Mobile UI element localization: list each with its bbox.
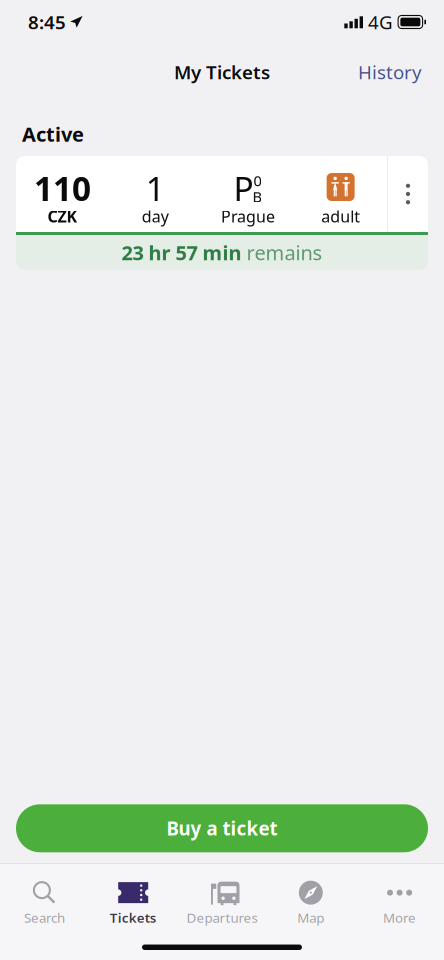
staticText: Map [297, 909, 324, 926]
staticText: P [233, 166, 253, 210]
staticText: 23 hr 57 min [121, 239, 241, 266]
staticText: Prague [221, 206, 275, 227]
staticText: CZK [47, 206, 77, 227]
staticText: 4G [368, 10, 393, 34]
button[interactable]: Buy a ticket [16, 804, 428, 852]
staticText: Departures [186, 909, 257, 926]
button[interactable]: Ticket options [388, 156, 428, 232]
staticText: More [383, 909, 416, 926]
staticText: Tickets [110, 909, 157, 926]
staticText: 8:45 [28, 10, 66, 34]
button[interactable]: More [355, 864, 444, 926]
staticText: History [358, 60, 422, 84]
staticText: remains [241, 239, 322, 266]
staticText: day [142, 206, 169, 227]
staticText: 110 [34, 166, 91, 210]
button[interactable]: Map [266, 864, 355, 926]
staticText: B [252, 187, 262, 206]
staticText: 0 [253, 171, 261, 190]
staticText: adult [321, 206, 360, 227]
button[interactable]: History [336, 50, 444, 94]
staticText: Active [22, 121, 84, 147]
button[interactable]: Tickets [89, 864, 178, 926]
staticText: Buy a ticket [166, 816, 277, 841]
staticText: 1 [146, 166, 165, 210]
staticText: My Tickets [174, 60, 270, 84]
staticText: Search [24, 909, 65, 926]
button[interactable]: Departures [178, 864, 266, 926]
button[interactable]: Search [0, 864, 89, 926]
